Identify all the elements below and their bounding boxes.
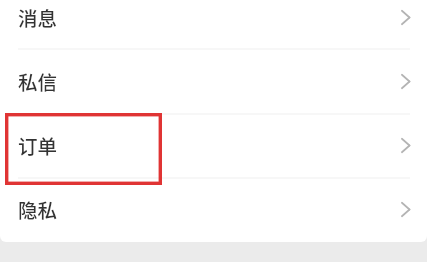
other: Open — [401, 202, 410, 217]
staticText: 私信 — [18, 67, 58, 95]
other: Open — [401, 10, 410, 25]
staticText: 消息 — [18, 3, 58, 31]
button[interactable]: 订单 — [0, 113, 427, 177]
staticText: 订单 — [18, 131, 58, 159]
other: Open — [401, 138, 410, 153]
staticText: 隐私 — [18, 195, 58, 223]
other: Open — [401, 74, 410, 89]
button[interactable]: 私信 — [0, 49, 427, 113]
button[interactable]: 隐私 — [0, 177, 427, 241]
button[interactable]: 消息 — [0, 0, 427, 49]
